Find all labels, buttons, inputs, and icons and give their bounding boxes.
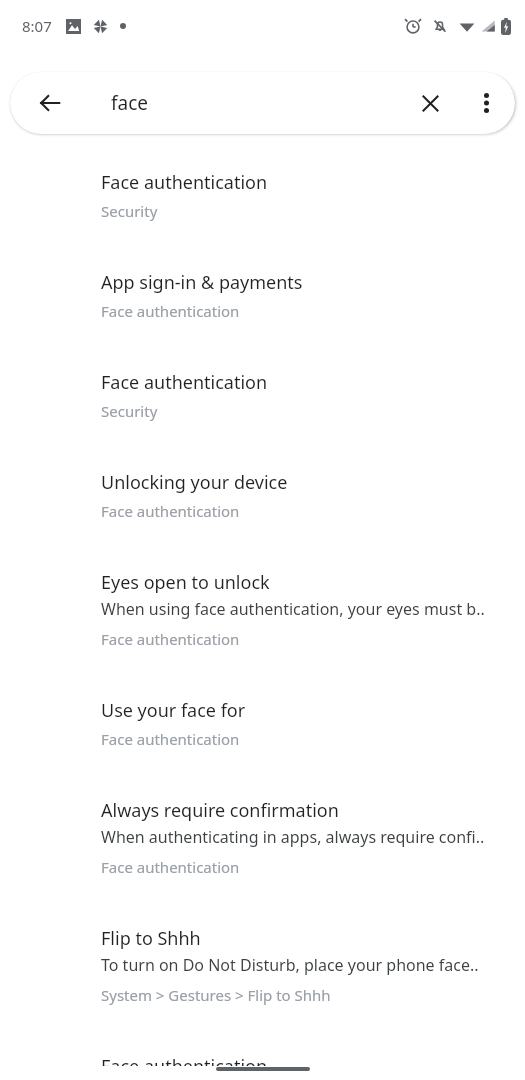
staticText: When using face authentication, your eye… (101, 598, 485, 620)
button[interactable]: Clear search (407, 80, 453, 126)
button[interactable]: Always require confirmation (0, 784, 525, 891)
staticText: Security (101, 401, 158, 421)
button[interactable]: More options (463, 80, 509, 126)
button[interactable]: Face authentication (0, 1040, 525, 1080)
button[interactable]: App sign-in & payments (0, 256, 525, 335)
button[interactable]: Face authentication (0, 356, 525, 435)
staticText: Always require confirmation (101, 798, 339, 823)
button[interactable]: Unlocking your device (0, 456, 525, 535)
staticText: System > Gestures > Flip to Shhh (101, 985, 331, 1005)
staticText: 8:07 (22, 16, 52, 36)
staticText: Face authentication (101, 501, 240, 521)
staticText: Face authentication (101, 1054, 268, 1066)
staticText: Eyes open to unlock (101, 570, 270, 595)
staticText: Flip to Shhh (101, 926, 201, 951)
staticText: Face authentication (101, 857, 240, 877)
button[interactable]: Use your face for (0, 684, 525, 763)
staticText: Face authentication (101, 370, 268, 395)
button[interactable]: Face authentication (0, 156, 525, 235)
staticText: Face authentication (101, 301, 240, 321)
staticText: To turn on Do Not Disturb, place your ph… (101, 954, 479, 976)
staticText: Face authentication (101, 629, 240, 649)
staticText: face (111, 90, 149, 116)
button[interactable]: Eyes open to unlock (0, 556, 525, 663)
button[interactable]: Back (26, 79, 74, 127)
button[interactable]: Flip to Shhh (0, 912, 525, 1019)
staticText: Face authentication (101, 729, 240, 749)
staticText: Security (101, 201, 158, 221)
staticText: App sign-in & payments (101, 270, 303, 295)
staticText: Unlocking your device (101, 470, 288, 495)
staticText: When authenticating in apps, always requ… (101, 826, 485, 848)
staticText: Use your face for (101, 698, 246, 723)
staticText: Face authentication (101, 170, 268, 195)
